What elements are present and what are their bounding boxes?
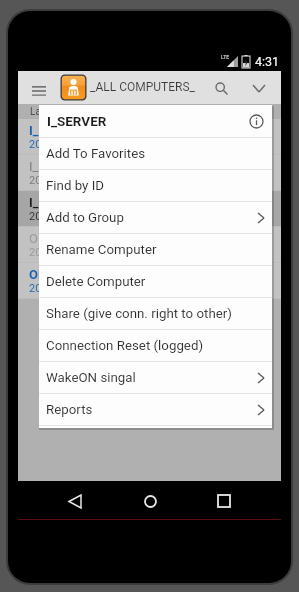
button[interactable]: Delete Computer xyxy=(39,266,272,297)
staticText: OFFICE2 xyxy=(29,267,80,282)
staticText: Find by ID xyxy=(46,178,105,194)
button[interactable]: I_WORK xyxy=(18,155,281,190)
button[interactable]: I_SERVER xyxy=(18,119,281,154)
staticText: I_SERVER xyxy=(29,123,87,138)
button[interactable]: WakeON singal xyxy=(39,362,272,393)
staticText: Add To Favorites xyxy=(46,146,146,162)
staticText: WakeON singal xyxy=(46,370,136,386)
staticText: Add to Group xyxy=(46,210,124,226)
button[interactable]: Connection Reset (logged) xyxy=(39,330,272,361)
staticText: 2019-11-15 xyxy=(29,246,85,259)
button[interactable]: Account xyxy=(60,74,87,101)
staticText: LTE xyxy=(221,54,230,60)
staticText: I_WORK xyxy=(29,159,76,174)
staticText: Reports xyxy=(46,402,93,418)
staticText: I_SERVER xyxy=(47,113,107,129)
staticText: 2019-11-18 xyxy=(29,174,85,187)
staticText: Delete Computer xyxy=(46,274,146,290)
staticText: Last connected xyxy=(30,106,99,118)
button[interactable]: Share (give conn. right to other) xyxy=(39,298,272,329)
button[interactable]: Rename Computer xyxy=(39,234,272,265)
button[interactable]: Recent apps xyxy=(207,484,241,518)
button[interactable]: Back xyxy=(58,484,92,518)
button[interactable]: Search xyxy=(211,78,231,98)
button[interactable]: Reports xyxy=(39,394,272,425)
staticText: _ALL COMPUTERS_ xyxy=(90,80,195,94)
button[interactable]: Home xyxy=(133,484,167,518)
staticText: 4:31 xyxy=(255,54,280,69)
staticText: 2019-11-12 xyxy=(29,282,85,295)
button[interactable]: Menu xyxy=(29,81,49,101)
button[interactable]: OFFICE2 xyxy=(18,263,281,298)
staticText: OFFICE xyxy=(29,231,72,246)
button[interactable]: Add to Group xyxy=(39,202,272,233)
staticText: Connection Reset (logged) xyxy=(46,338,204,354)
staticText: 2019-11-17 xyxy=(29,210,85,223)
staticText: I_SERVER xyxy=(29,195,87,210)
staticText: Share (give conn. right to other) xyxy=(46,306,232,322)
button[interactable]: Add To Favorites xyxy=(39,138,272,169)
button[interactable]: OFFICE xyxy=(18,227,281,262)
button[interactable]: Find by ID xyxy=(39,170,272,201)
button[interactable]: I_SERVER xyxy=(18,191,281,226)
staticText: 2019-11-20 xyxy=(29,138,85,151)
button[interactable]: More options xyxy=(249,78,269,98)
button[interactable]: Info xyxy=(247,112,265,130)
staticText: Rename Computer xyxy=(46,242,157,258)
